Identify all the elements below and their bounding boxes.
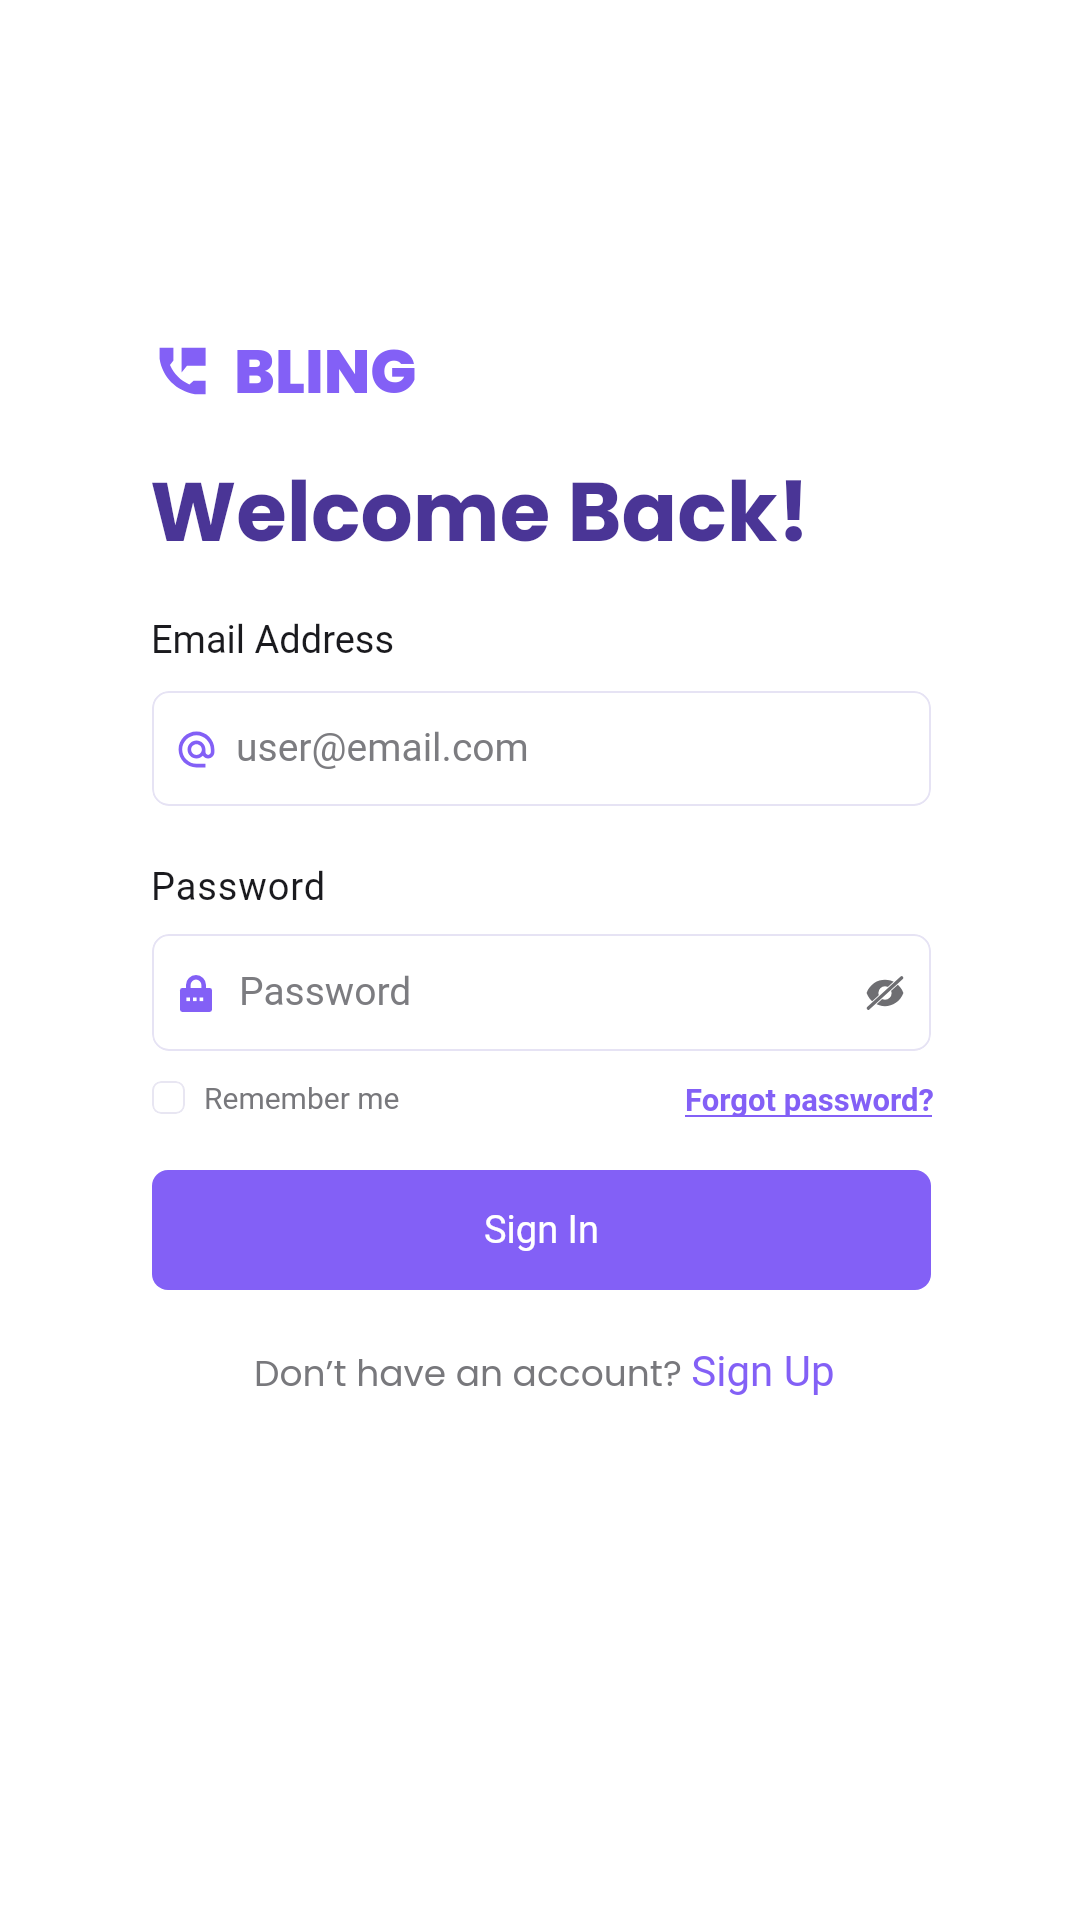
staticText: Password [151,865,327,910]
button[interactable]: Remember me [204,1081,400,1116]
staticText: Password [239,969,412,1015]
button[interactable]: Don’t have an account? Sign Up [254,1347,835,1399]
button[interactable]: user@email.com [152,691,931,806]
staticText: Don’t have an account? Sign Up [254,1347,835,1399]
button[interactable]: BLING [159,328,417,413]
button[interactable]: Sign In [152,1170,931,1290]
staticText: BLING [234,329,417,414]
button[interactable]: Forgot password? [685,1082,934,1118]
staticText: Welcome Back! [150,455,810,570]
staticText: Email Address [151,618,395,663]
staticText: Sign In [484,1208,599,1253]
button[interactable]: Show password [853,961,917,1025]
button[interactable] [152,1081,185,1114]
staticText: user@email.com [236,725,529,771]
button[interactable]: Password [152,934,931,1051]
staticText: Forgot password? [685,1082,934,1118]
